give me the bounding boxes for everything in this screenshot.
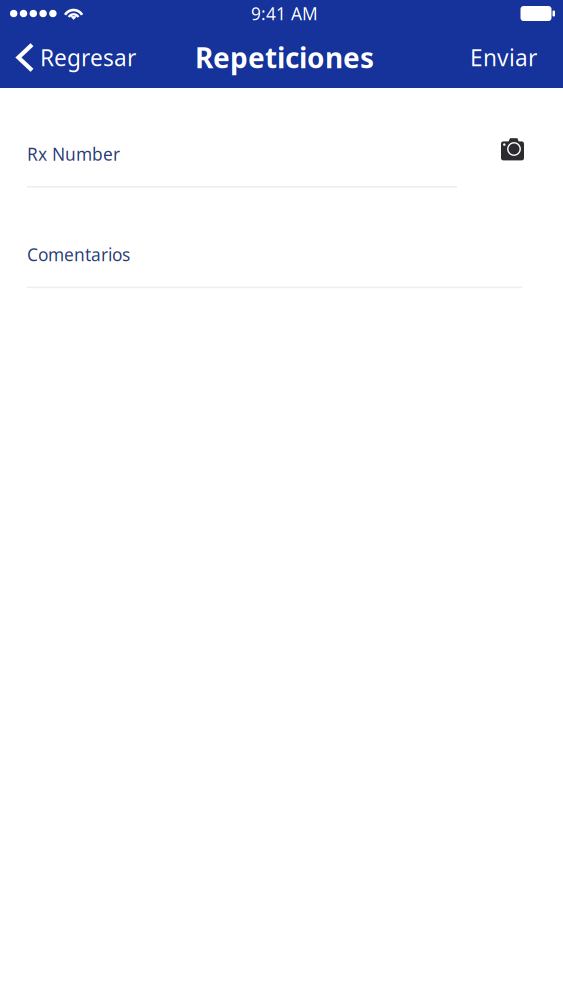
staticText: Enviar (470, 42, 537, 72)
staticText: Rx Number (27, 142, 120, 165)
button[interactable]: Rx Number (27, 142, 457, 166)
button[interactable]: Scan prescription (501, 138, 563, 170)
button[interactable]: Enviar (456, 32, 563, 82)
staticText: 9:41 AM (251, 2, 318, 25)
staticText: Comentarios (27, 243, 130, 266)
staticText: Regresar (40, 42, 136, 72)
button[interactable]: Comentarios (27, 243, 522, 267)
button[interactable]: Regresar (0, 32, 146, 82)
staticText: Repeticiones (195, 39, 374, 76)
